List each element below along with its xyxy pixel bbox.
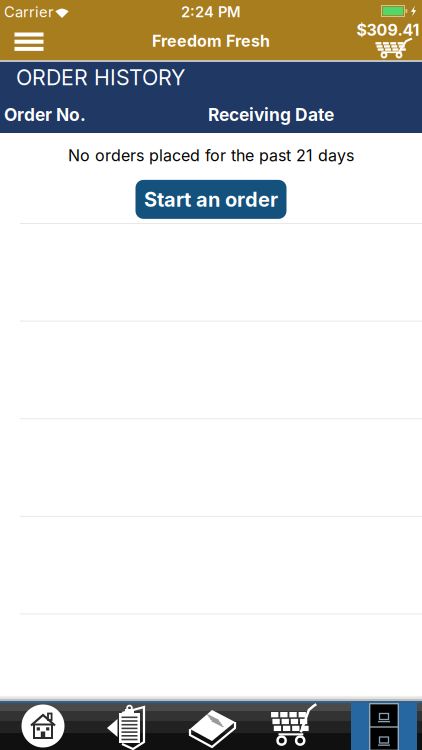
staticText: ORDER HISTORY [16,65,185,90]
staticText: 2:24 PM [181,3,241,21]
staticText: $309.41 [356,21,419,39]
button[interactable]: $309.41 [351,22,417,60]
staticText: Carrier [4,3,54,21]
button[interactable] [344,703,422,750]
staticText: No orders placed for the past 21 days [68,146,354,165]
staticText: Order No. [4,105,86,125]
staticText: Receiving Date [208,105,334,125]
button[interactable] [86,703,166,750]
button[interactable]: Start an order [135,180,286,219]
button[interactable] [3,702,83,749]
button[interactable] [171,703,251,750]
staticText: Freedom Fresh [152,32,270,50]
button[interactable] [254,701,334,748]
button[interactable] [7,26,51,58]
staticText: Start an order [144,188,278,211]
